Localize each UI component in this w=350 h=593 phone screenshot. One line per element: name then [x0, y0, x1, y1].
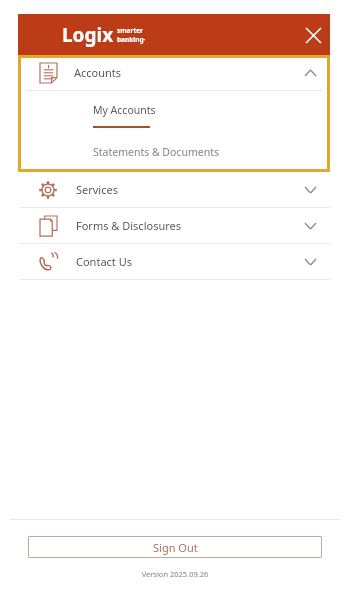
button[interactable]: Close	[296, 18, 330, 52]
staticText: Forms & Disclosures	[76, 218, 182, 233]
button[interactable]: Contact Us	[20, 244, 330, 279]
button[interactable]: Accounts	[18, 55, 330, 90]
staticText: smarter	[117, 26, 144, 35]
staticText: Sign Out	[153, 540, 198, 555]
staticText: Accounts	[74, 65, 122, 80]
button[interactable]: Forms & Disclosures	[20, 208, 330, 243]
button[interactable]: Services	[20, 172, 330, 207]
button[interactable]: My Accounts	[18, 91, 330, 132]
button[interactable]: Sign Out	[28, 536, 322, 558]
staticText: banking·	[117, 35, 146, 44]
staticText: Services	[76, 182, 118, 197]
staticText: Contact Us	[76, 254, 132, 269]
staticText: Logix	[62, 22, 114, 48]
staticText: My Accounts	[93, 103, 156, 117]
button[interactable]: Statements & Documents	[18, 132, 330, 172]
staticText: Version 2025.09.26	[0, 569, 350, 579]
staticText: Statements & Documents	[93, 145, 219, 159]
